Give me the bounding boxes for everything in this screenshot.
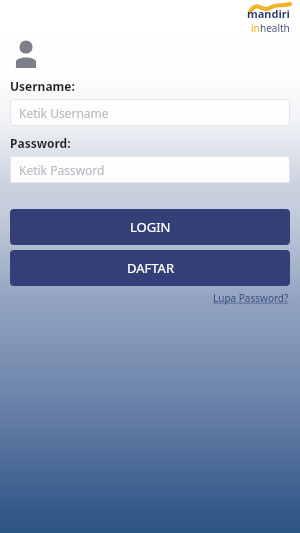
button[interactable]: Ketik Username xyxy=(10,99,290,126)
staticText: mandiri xyxy=(247,6,290,21)
staticText: Ketik Password xyxy=(19,162,105,178)
staticText: Username: xyxy=(10,78,75,94)
button[interactable]: Ketik Password xyxy=(10,156,290,183)
staticText: Password: xyxy=(10,135,71,151)
staticText: health xyxy=(260,21,290,35)
button[interactable]: Lupa Password? xyxy=(213,291,289,305)
staticText: Ketik Username xyxy=(19,105,109,121)
other: Mandiri Inhealth logo xyxy=(230,3,290,35)
staticText: LOGIN xyxy=(130,218,171,236)
button[interactable]: DAFTAR xyxy=(10,250,290,286)
staticText: Lupa Password? xyxy=(213,291,289,305)
staticText: DAFTAR xyxy=(127,259,174,277)
staticText: in xyxy=(251,21,260,35)
button[interactable]: LOGIN xyxy=(10,209,290,245)
